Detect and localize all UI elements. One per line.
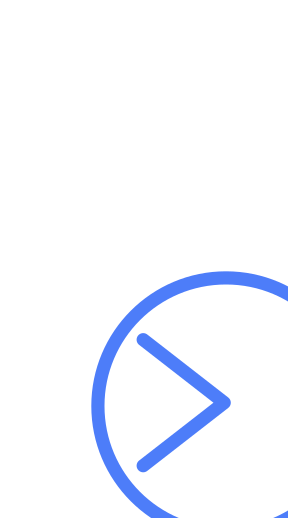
button[interactable]: Continue xyxy=(91,271,288,518)
